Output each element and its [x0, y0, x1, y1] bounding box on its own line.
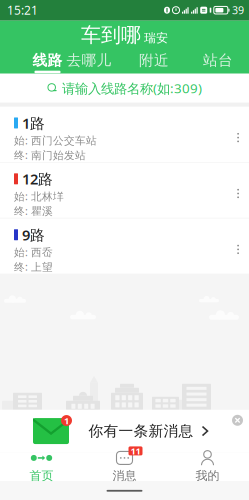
button[interactable]: 9路	[0, 218, 249, 274]
staticText: 始: 北林垟	[14, 189, 64, 203]
button[interactable]: 首页	[0, 452, 83, 481]
staticText: 消息	[112, 468, 136, 483]
button[interactable]: 请输入线路名称(如:309)	[0, 74, 249, 103]
staticText: 1路	[22, 113, 45, 133]
staticText: 你有一条新消息	[88, 422, 193, 440]
staticText: 车到哪	[81, 23, 141, 47]
button[interactable]: 12路	[0, 163, 249, 218]
staticText: 始: 西岙	[14, 245, 53, 259]
staticText: 11	[130, 445, 140, 457]
button[interactable]: 我的	[166, 452, 249, 481]
staticText: 我的	[195, 468, 219, 483]
staticText: 站台	[203, 51, 233, 69]
staticText: 去哪儿	[66, 51, 111, 69]
button[interactable]: 1	[0, 410, 249, 452]
button[interactable]: 1路	[0, 107, 249, 162]
staticText: 首页	[29, 468, 53, 483]
staticText: 1	[64, 414, 69, 427]
button[interactable]: 线路	[0, 50, 172, 74]
staticText: 线路	[32, 51, 62, 69]
staticText: 12路	[22, 169, 53, 189]
staticText: 39	[232, 3, 244, 17]
staticText: 瑞安	[144, 31, 168, 45]
button[interactable]: 附近	[29, 50, 249, 74]
button[interactable]: Dismiss	[232, 410, 249, 426]
staticText: 终: 上望	[14, 260, 53, 274]
button[interactable]: 11	[83, 452, 166, 481]
button[interactable]: 去哪儿	[0, 50, 213, 74]
staticText: 始: 西门公交车站	[14, 133, 97, 147]
staticText: 9路	[22, 225, 45, 244]
staticText: 终: 瞿溪	[14, 204, 53, 218]
staticText: 终: 南门始发站	[14, 148, 86, 162]
staticText: 15:21	[7, 2, 38, 18]
staticText: 请输入线路名称(如:309)	[62, 79, 202, 97]
staticText: 附近	[139, 51, 169, 69]
button[interactable]: 站台	[93, 50, 249, 74]
